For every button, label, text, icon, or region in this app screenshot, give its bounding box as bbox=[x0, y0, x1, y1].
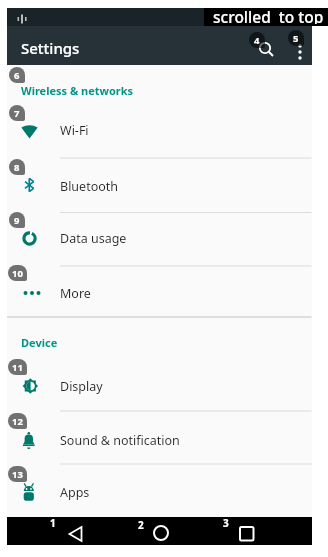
staticText: 2 bbox=[138, 518, 144, 532]
staticText: 7 bbox=[14, 107, 20, 120]
staticText: 12 bbox=[12, 415, 23, 428]
staticText: 3 bbox=[223, 516, 229, 530]
button[interactable] bbox=[61, 520, 89, 544]
staticText: 4 bbox=[254, 34, 260, 47]
button[interactable]: Wi-Fi bbox=[7, 104, 312, 158]
staticText: Sound & notification bbox=[60, 432, 180, 449]
button[interactable]: Sound & notification bbox=[7, 411, 312, 464]
staticText: Device bbox=[21, 335, 58, 350]
staticText: More bbox=[60, 285, 91, 302]
button[interactable]: Data usage bbox=[7, 212, 312, 266]
staticText: 6 bbox=[14, 69, 20, 82]
button[interactable]: Bluetooth bbox=[7, 158, 312, 212]
staticText: Wireless & networks bbox=[21, 83, 134, 98]
staticText: Settings bbox=[21, 38, 80, 58]
button[interactable] bbox=[233, 520, 261, 544]
button[interactable]: More bbox=[7, 266, 312, 317]
staticText: 8 bbox=[14, 161, 20, 174]
staticText: Apps bbox=[60, 484, 90, 501]
button[interactable]: Apps bbox=[7, 464, 312, 517]
button[interactable]: Display bbox=[7, 358, 312, 411]
staticText: Bluetooth bbox=[60, 178, 119, 195]
button[interactable] bbox=[252, 34, 280, 62]
staticText: scrolled to top bbox=[213, 6, 324, 24]
staticText: Data usage bbox=[60, 230, 127, 247]
button[interactable] bbox=[292, 34, 310, 62]
staticText: 1 bbox=[50, 516, 56, 530]
staticText: 11 bbox=[12, 361, 23, 374]
staticText: 9 bbox=[14, 214, 20, 227]
staticText: Wi-Fi bbox=[60, 122, 89, 139]
staticText: 10 bbox=[12, 267, 23, 280]
staticText: 5 bbox=[293, 32, 299, 45]
button[interactable] bbox=[147, 519, 175, 545]
staticText: 13 bbox=[12, 468, 23, 481]
staticText: Display bbox=[60, 378, 103, 395]
